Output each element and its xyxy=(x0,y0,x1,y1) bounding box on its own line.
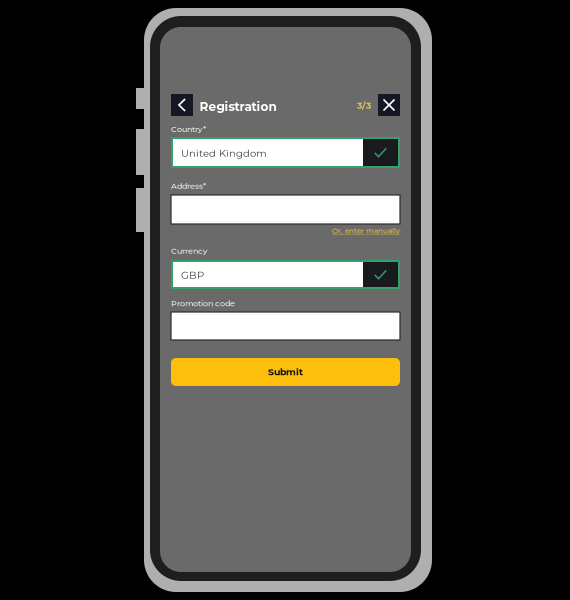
staticText: Submit xyxy=(268,366,303,378)
staticText: Country* xyxy=(171,124,206,134)
button[interactable]: Promotion code xyxy=(171,312,400,340)
button[interactable]: Back xyxy=(171,94,193,116)
staticText: 3/3 xyxy=(357,100,371,111)
button[interactable]: Close xyxy=(378,94,400,116)
staticText: Promotion code xyxy=(171,298,235,308)
button[interactable]: Submit xyxy=(171,358,400,386)
button[interactable]: Address xyxy=(171,195,400,224)
button[interactable]: Or, enter manually xyxy=(332,226,400,235)
button[interactable]: Country, United Kingdom xyxy=(171,137,400,168)
staticText: Address* xyxy=(171,181,206,191)
button[interactable]: Currency, GBP xyxy=(171,260,400,289)
staticText: Registration xyxy=(199,99,276,114)
staticText: GBP xyxy=(181,269,204,281)
staticText: United Kingdom xyxy=(181,147,267,159)
staticText: Currency xyxy=(171,246,207,256)
staticText: Or, enter manually xyxy=(332,226,400,235)
